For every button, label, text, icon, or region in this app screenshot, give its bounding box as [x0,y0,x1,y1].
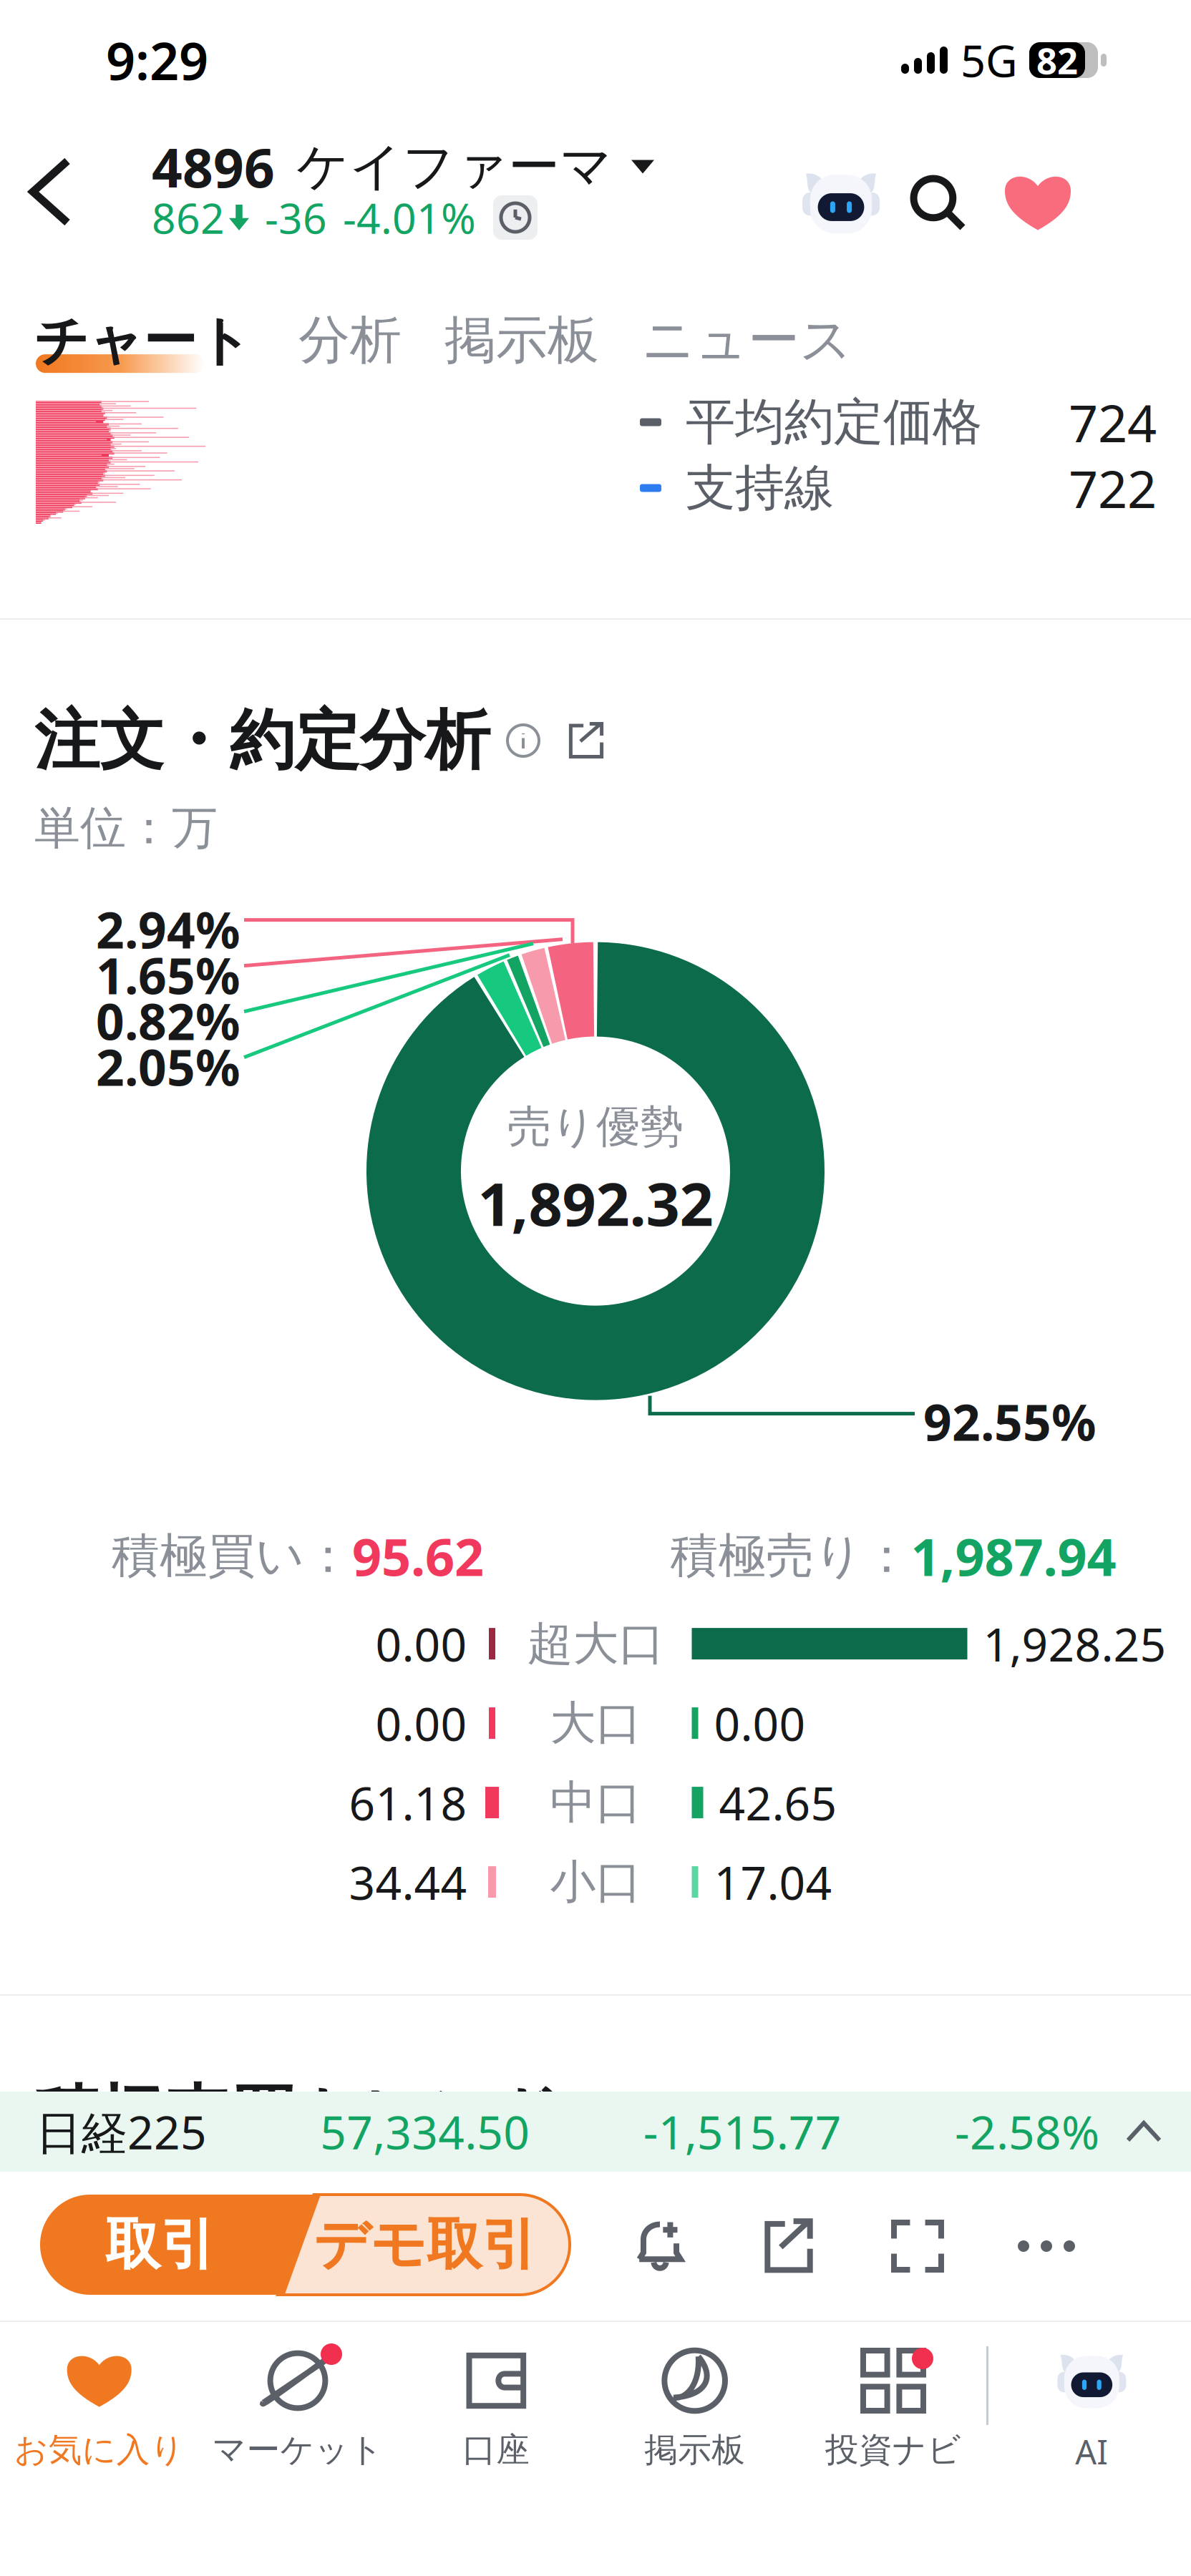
staticText: 95.62 [352,1522,484,1590]
button[interactable]: AI [993,2322,1191,2576]
staticText: マーケット [212,2429,383,2470]
staticText: デモ取引 [313,2211,537,2279]
staticText: 2.05% [96,1034,240,1100]
button[interactable]: AI assistant [794,156,888,249]
staticText: 4896 [152,131,275,202]
button[interactable]: Info [490,725,556,756]
staticText: 17.04 [714,1852,832,1912]
staticText: -4.01% [343,190,476,245]
staticText: -2.58% [955,2101,1099,2162]
staticText: 2.94% [96,896,240,962]
staticText: AI [1075,2429,1108,2474]
button[interactable]: 口座 [397,2322,595,2576]
button[interactable]: Price alert [595,2196,724,2296]
staticText: 0.00 [714,1693,806,1754]
staticText: 掲示板 [444,308,599,372]
staticText: 862 [152,190,225,245]
staticText: 0.00 [375,1613,467,1674]
button[interactable]: Share [724,2196,853,2296]
staticText: 1.65% [96,942,240,1008]
button[interactable]: 分析 [298,308,444,372]
staticText: 1,987.94 [911,1522,1116,1590]
button[interactable]: チャート [34,308,298,374]
staticText: 0.00 [375,1693,467,1754]
staticText: 支持線 [686,458,834,518]
button[interactable]: Fullscreen [853,2196,982,2296]
staticText: 口座 [463,2429,530,2470]
staticText: 積極売買トレンド [34,2076,561,2156]
staticText: 1,928.25 [983,1613,1166,1674]
staticText: チャート [34,308,251,374]
staticText: 積極売り： [670,1527,911,1585]
button[interactable]: 取引 [0,2172,570,2295]
staticText: 724 [1069,388,1157,456]
button[interactable]: Favorite [988,156,1088,249]
staticText: 1,892.32 [478,1164,713,1242]
staticText: 34.44 [349,1852,467,1912]
staticText: 単位：万 [34,800,218,856]
staticText: 61.18 [349,1772,467,1833]
button[interactable]: Back [0,120,100,263]
staticText: 注文・約定分析 [34,701,490,780]
button[interactable]: 掲示板 [444,308,642,372]
staticText: ケイファーマ [296,135,613,198]
staticText: -36 [265,190,327,245]
staticText: 0.82% [96,988,240,1054]
staticText: 日経225 [36,2101,207,2162]
staticText: 57,334.50 [320,2101,530,2162]
staticText: 722 [1069,454,1157,522]
staticText: 積極買い： [112,1527,352,1585]
button[interactable]: More [982,2196,1111,2296]
button[interactable]: 掲示板 [595,2322,794,2576]
button[interactable]: ニュース [642,308,852,372]
staticText: -1,515.77 [643,2101,842,2162]
staticText: 42.65 [719,1772,837,1833]
staticText: 投資ナビ [825,2429,961,2470]
staticText: 92.55% [923,1389,1097,1455]
staticText: 82 [1036,36,1078,84]
staticText: お気に入り [14,2429,184,2470]
staticText: 分析 [298,308,402,372]
button[interactable]: お気に入り [0,2322,198,2576]
staticText: 売り優勢 [507,1100,684,1154]
staticText: 小口 [550,1854,642,1910]
staticText: 中口 [550,1774,642,1831]
staticText: 平均約定価格 [686,392,982,453]
staticText: 大口 [550,1695,642,1751]
button[interactable]: マーケット [198,2322,397,2576]
staticText: 5G [961,31,1018,89]
staticText: 掲示板 [644,2429,745,2470]
button[interactable]: Search [888,156,988,249]
button[interactable]: 投資ナビ [794,2322,992,2576]
staticText: 取引 [105,2211,215,2279]
staticText: 9:29 [106,26,208,94]
button[interactable]: 日経225 [0,2092,1191,2172]
staticText: 超大口 [527,1616,665,1672]
staticText: ニュース [642,308,852,372]
button[interactable]: Share [556,723,616,758]
